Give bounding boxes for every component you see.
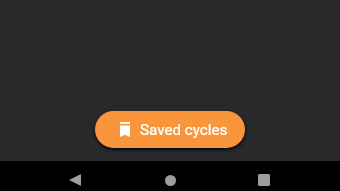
button[interactable]: Saved cycles [95,111,245,148]
button[interactable]: Back [51,161,99,191]
staticText: Saved cycles [140,121,228,139]
button[interactable]: Recent apps [240,161,288,191]
button[interactable]: Home [146,161,194,191]
